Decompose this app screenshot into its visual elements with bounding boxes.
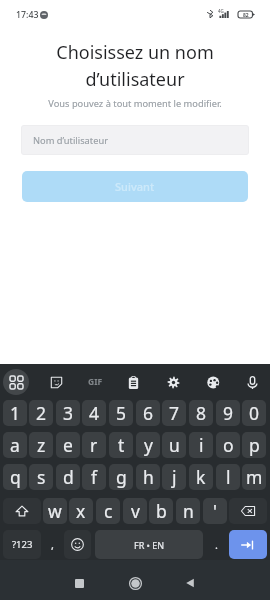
staticText: r [90, 433, 98, 457]
staticText: 4 [89, 401, 100, 425]
staticText: t [118, 433, 125, 457]
button[interactable]: h [136, 464, 160, 490]
button[interactable]: g [109, 464, 133, 490]
button[interactable]: Period [205, 530, 227, 559]
button[interactable]: i [189, 432, 213, 458]
staticText: n [183, 499, 194, 523]
button[interactable]: b [149, 498, 173, 524]
button[interactable]: Stickers [43, 369, 69, 395]
button[interactable]: 8 [189, 400, 213, 426]
button[interactable]: Shift [3, 498, 41, 524]
staticText: 4G [218, 8, 224, 14]
button[interactable]: o [216, 432, 240, 458]
staticText: 3 [63, 401, 74, 425]
button[interactable]: p [242, 432, 266, 458]
button[interactable]: f [82, 464, 106, 490]
staticText: v [131, 499, 140, 523]
staticText: 9 [223, 401, 234, 425]
button[interactable]: 1 [3, 400, 27, 426]
button[interactable]: t [109, 432, 133, 458]
button[interactable]: Themes [200, 369, 226, 395]
button[interactable]: 6 [136, 400, 160, 426]
staticText: x [76, 499, 86, 523]
button[interactable]: c [96, 498, 120, 524]
button[interactable]: k [189, 464, 213, 490]
staticText: u [169, 433, 180, 457]
button[interactable]: ' [203, 498, 227, 524]
staticText: k [196, 465, 206, 489]
staticText: z [37, 433, 46, 457]
button[interactable]: v [123, 498, 147, 524]
button[interactable]: 9 [216, 400, 240, 426]
button[interactable]: 2 [29, 400, 53, 426]
staticText: c [104, 499, 113, 523]
staticText: Suivant [115, 179, 155, 194]
staticText: 8 [196, 401, 207, 425]
staticText: f [91, 465, 98, 489]
button[interactable]: Backspace [229, 498, 267, 524]
button[interactable]: ?123 [3, 530, 41, 559]
button[interactable]: r [82, 432, 106, 458]
button[interactable]: Voice input [239, 369, 265, 395]
staticText: , [51, 537, 54, 552]
button[interactable]: Settings [160, 369, 186, 395]
staticText: a [10, 433, 20, 457]
button[interactable]: a [3, 432, 27, 458]
button[interactable]: Home [120, 568, 150, 598]
button[interactable]: 0 [242, 400, 266, 426]
button[interactable]: y [136, 432, 160, 458]
button[interactable]: 7 [162, 400, 186, 426]
button[interactable]: Nom d’utilisateur [21, 125, 249, 155]
staticText: y [144, 433, 153, 457]
staticText: p [249, 433, 260, 457]
staticText: e [63, 433, 73, 457]
button[interactable]: 5 [109, 400, 133, 426]
button[interactable]: u [162, 432, 186, 458]
button[interactable]: Clipboard [120, 369, 146, 395]
button[interactable]: j [162, 464, 186, 490]
staticText: m [246, 465, 263, 489]
button[interactable]: q [3, 464, 27, 490]
staticText: Choisissez un nom d’utilisateur [0, 40, 270, 91]
staticText: 82 [243, 12, 249, 19]
staticText: ?123 [12, 538, 33, 551]
staticText: FR • EN [134, 539, 165, 551]
button[interactable]: GIF [82, 369, 108, 395]
staticText: q [10, 465, 21, 489]
button[interactable]: w [43, 498, 67, 524]
button[interactable]: Back [175, 568, 205, 598]
staticText: GIF [88, 376, 103, 388]
staticText: d [63, 465, 74, 489]
staticText: 0 [249, 401, 260, 425]
button[interactable]: x [69, 498, 93, 524]
staticText: 2 [36, 401, 47, 425]
staticText: 17:43 [16, 9, 39, 21]
button[interactable]: e [56, 432, 80, 458]
button[interactable]: l [216, 464, 240, 490]
button[interactable]: Suivant [22, 171, 248, 202]
button[interactable]: s [29, 464, 53, 490]
button[interactable]: 3 [56, 400, 80, 426]
button[interactable]: d [56, 464, 80, 490]
staticText: w [48, 499, 62, 523]
button[interactable]: Emoji [64, 530, 91, 559]
button[interactable]: n [176, 498, 200, 524]
button[interactable]: Comma [42, 530, 62, 559]
staticText: l [226, 465, 231, 489]
staticText: s [37, 465, 46, 489]
button[interactable]: 4 [82, 400, 106, 426]
button[interactable]: FR • EN [95, 530, 203, 559]
staticText: . [215, 537, 218, 552]
staticText: 5 [116, 401, 127, 425]
staticText: 6 [143, 401, 154, 425]
button[interactable]: Recents [64, 568, 94, 598]
button[interactable]: Apps [3, 369, 29, 395]
staticText: b [156, 499, 167, 523]
staticText: Nom d’utilisateur [33, 134, 109, 147]
button[interactable]: z [29, 432, 53, 458]
button[interactable]: Next [229, 530, 267, 559]
staticText: j [172, 465, 177, 489]
staticText: ' [213, 499, 217, 523]
button[interactable]: m [242, 464, 266, 490]
staticText: 7 [169, 401, 180, 425]
